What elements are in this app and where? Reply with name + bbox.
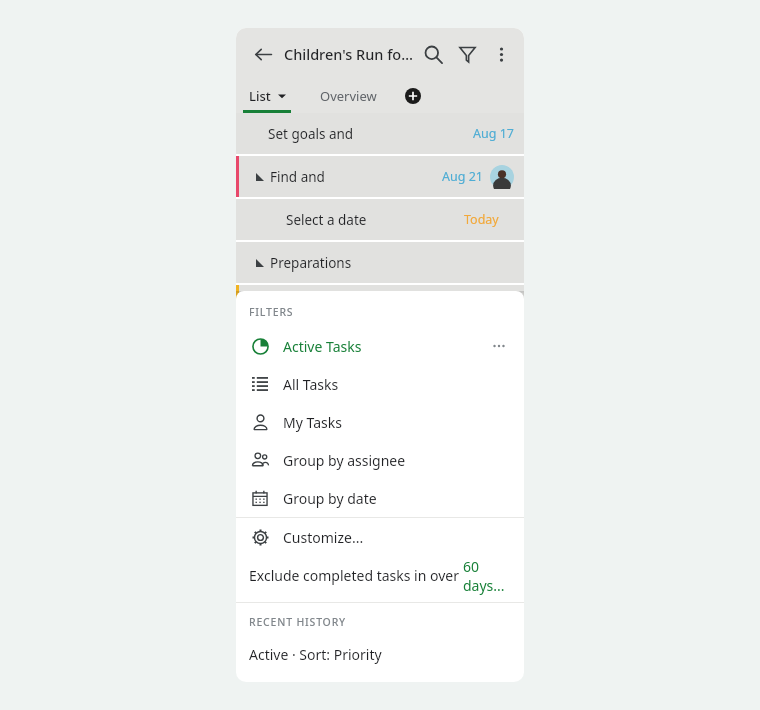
button[interactable]: Group by assignee: [236, 441, 524, 479]
staticText: All Tasks: [283, 375, 339, 394]
staticText: Active · Sort: Priority: [249, 645, 382, 664]
button[interactable]: Find and reserve location: [236, 156, 524, 197]
button[interactable]: More options: [484, 37, 518, 71]
staticText: Aug 21: [442, 168, 483, 185]
button[interactable]: Search: [416, 37, 450, 71]
staticText: Group by assignee: [283, 451, 406, 470]
button[interactable]: Exclude completed tasks in over: [236, 556, 524, 595]
button[interactable]: Overview: [298, 79, 398, 113]
staticText: Active Tasks: [283, 337, 487, 356]
button[interactable]: Add: [398, 81, 428, 111]
staticText: List: [249, 87, 271, 105]
button[interactable]: Active Tasks: [236, 327, 524, 365]
button[interactable]: Filter: [450, 37, 484, 71]
staticText: Children's Run for ...: [284, 44, 416, 64]
button[interactable]: Set goals and objectives: [236, 113, 524, 154]
button[interactable]: Preparations: [236, 242, 524, 283]
staticText: Find and reserve location: [270, 168, 356, 186]
staticText: Exclude completed tasks in over: [249, 566, 463, 585]
staticText: Preparations: [270, 254, 352, 272]
button[interactable]: List: [236, 79, 298, 113]
staticText: Group by date: [283, 489, 377, 508]
staticText: Aug 17: [473, 125, 514, 142]
staticText: FILTERS: [249, 305, 294, 319]
staticText: Customize...: [283, 528, 364, 547]
staticText: Contact suppliers: [286, 297, 384, 315]
staticText: Today: [464, 211, 499, 228]
button[interactable]: More options: [487, 334, 511, 358]
staticText: Overview: [320, 87, 377, 105]
button[interactable]: Back: [246, 37, 280, 71]
button[interactable]: Select a date: [236, 199, 524, 240]
staticText: My Tasks: [283, 413, 342, 432]
button[interactable]: Contact suppliers: [236, 285, 524, 326]
button[interactable]: Customize...: [236, 518, 524, 556]
button[interactable]: Group by date: [236, 479, 524, 517]
staticText: Select a date: [286, 211, 367, 229]
button[interactable]: My Tasks: [236, 403, 524, 441]
staticText: RECENT HISTORY: [249, 615, 347, 629]
button[interactable]: All Tasks: [236, 365, 524, 403]
staticText: 60 days...: [463, 557, 512, 595]
staticText: Set goals and objectives: [268, 125, 370, 143]
button[interactable]: Active · Sort: Priority: [236, 637, 524, 671]
